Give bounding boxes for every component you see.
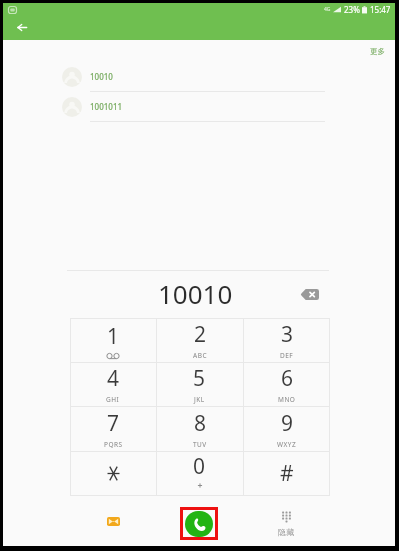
button[interactable]: 3 [243,318,330,362]
button[interactable]: 1 [70,318,156,362]
button[interactable]: 0 [156,451,243,496]
button[interactable]: 4 [70,362,156,406]
staticText: DEF [280,351,294,360]
staticText: 1 [107,322,120,351]
staticText: JKL [194,395,205,404]
staticText: 9 [281,409,294,438]
button[interactable]: # [243,451,330,496]
staticText: 10010 [158,276,233,311]
staticText: 更多 [370,47,385,56]
button[interactable]: 1001011 [3,92,395,122]
button[interactable]: 5 [156,362,243,406]
staticText: 4 [107,364,120,393]
staticText: 23% [344,4,360,15]
button[interactable]: 2 [156,318,243,362]
staticText: 1001011 [90,101,123,112]
button[interactable]: 9 [243,406,330,451]
button[interactable]: 8 [156,406,243,451]
button[interactable]: 更多 [363,42,391,61]
button[interactable]: Call [180,507,218,540]
button[interactable]: 10010 [3,62,395,92]
button[interactable]: Back [13,20,31,35]
staticText: GHI [106,395,120,404]
button[interactable]: Backspace [296,281,322,307]
staticText: 7 [107,409,120,438]
staticText: # [280,459,294,488]
staticText: 6 [281,364,294,393]
staticText: 0 [193,452,206,481]
staticText: 隐藏 [278,527,294,537]
staticText: WXYZ [277,440,297,449]
staticText: 8 [194,409,207,438]
button[interactable]: Send message [99,507,127,535]
button[interactable] [70,451,156,496]
staticText: ABC [193,351,207,360]
button[interactable]: 6 [243,362,330,406]
staticText: MNO [278,395,296,404]
staticText: 2 [194,320,207,349]
staticText: TUV [193,440,207,449]
staticText: 5 [193,364,206,393]
button[interactable]: Hide keypad [265,512,306,542]
staticText: 4G [324,6,331,13]
staticText: PQRS [104,440,123,449]
staticText: 3 [281,320,294,349]
button[interactable]: 7 [70,406,156,451]
staticText: 15:47 [370,4,391,15]
staticText: 10010 [90,71,113,82]
